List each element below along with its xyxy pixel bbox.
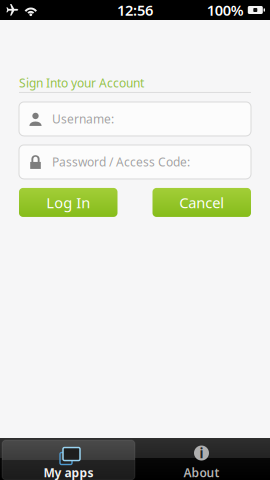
button[interactable]: My apps xyxy=(2,440,135,480)
staticText: About xyxy=(183,464,219,480)
button[interactable]: Password / Access Code: xyxy=(19,145,251,179)
staticText: Cancel xyxy=(179,193,224,212)
staticText: My apps xyxy=(43,464,93,480)
button[interactable]: i xyxy=(135,440,268,480)
button[interactable]: Cancel xyxy=(152,188,251,217)
staticText: Sign Into your Account xyxy=(19,75,144,91)
button[interactable]: Log In xyxy=(19,188,117,217)
staticText: Username: xyxy=(52,111,114,127)
staticText: i xyxy=(199,444,203,462)
staticText: 12:56 xyxy=(117,0,153,20)
staticText: Password / Access Code: xyxy=(52,154,190,170)
staticText: 100% xyxy=(207,0,244,20)
button[interactable]: Username: xyxy=(19,102,251,136)
staticText: Log In xyxy=(46,193,90,212)
